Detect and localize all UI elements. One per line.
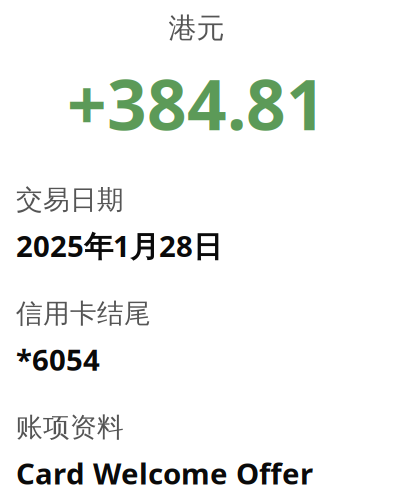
staticText: +384.81 [67, 57, 326, 149]
staticText: 交易日期 [16, 183, 124, 216]
staticText: 港元 [168, 11, 224, 45]
staticText: Card Welcome Offer [16, 454, 313, 493]
staticText: 账项资料 [16, 411, 124, 444]
staticText: 2025年1月28日 [16, 226, 222, 265]
staticText: 信用卡结尾 [16, 297, 151, 330]
staticText: *6054 [16, 340, 100, 379]
